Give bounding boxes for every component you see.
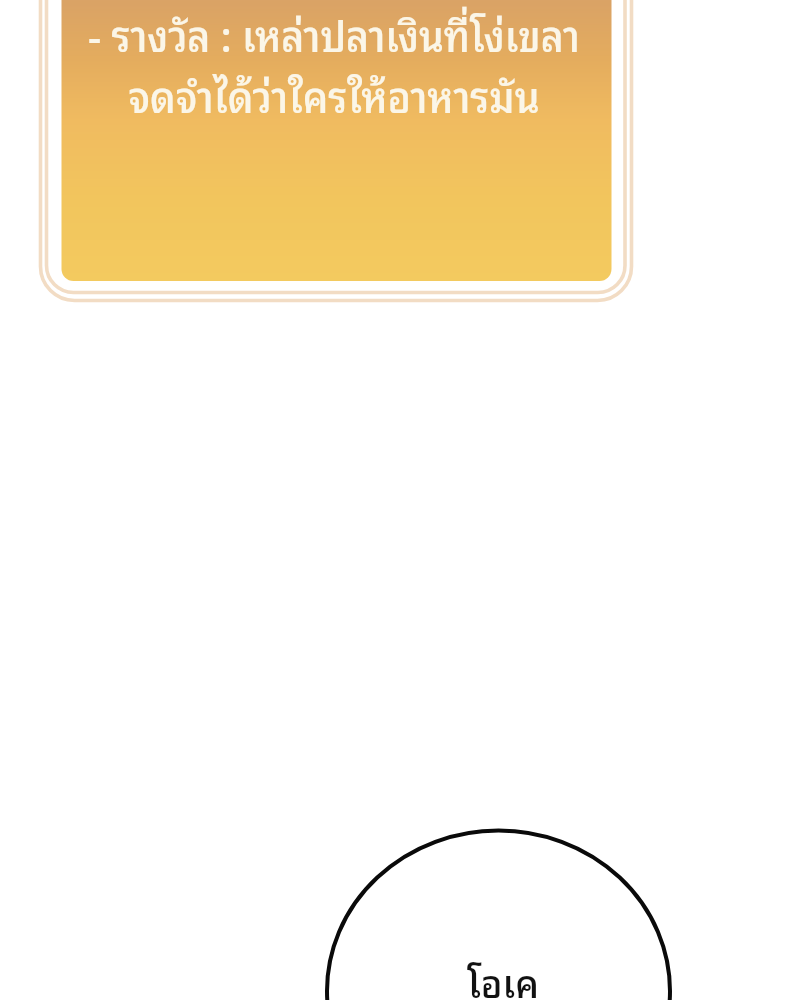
staticText: โอเค	[467, 949, 539, 1000]
button[interactable]: โอเค (OK)	[327, 831, 670, 1000]
button[interactable]: - รางวัล : เหล่าปลาเงินที่โง่เขลา จดจำได…	[54, 0, 614, 128]
